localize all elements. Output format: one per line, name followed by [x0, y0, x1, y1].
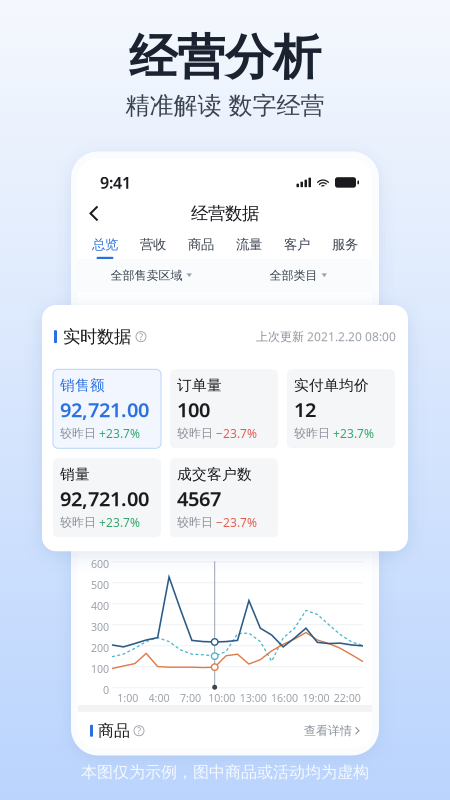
staticText: 2021.2.20 08:00	[304, 329, 396, 345]
staticText: 9:41	[100, 172, 131, 193]
staticText: 较昨日	[294, 426, 330, 441]
staticText: 16:00	[271, 691, 298, 705]
staticText: −23.7%	[216, 514, 257, 530]
button[interactable]: 全部售卖区域	[78, 259, 225, 292]
button[interactable]: 全部类目	[225, 259, 372, 292]
staticText: 流量	[236, 236, 262, 253]
button[interactable]: 返回	[84, 200, 104, 227]
button[interactable]: 销售额	[53, 369, 161, 448]
staticText: 较昨日	[60, 426, 96, 441]
staticText: 上次更新	[256, 329, 304, 344]
staticText: 7:00	[180, 691, 201, 705]
staticText: 0	[103, 683, 109, 697]
staticText: 92,721.00	[60, 485, 149, 512]
button[interactable]: 总览	[81, 233, 129, 259]
button[interactable]: 商品	[177, 233, 225, 259]
staticText: 销量	[60, 465, 90, 483]
staticText: 全部类目	[269, 268, 317, 283]
button[interactable]: 实付单均价	[287, 369, 395, 448]
staticText: 商品	[98, 721, 130, 741]
staticText: 400	[91, 599, 109, 613]
button[interactable]: 成交客户数	[170, 458, 278, 537]
staticText: 服务	[332, 236, 358, 253]
staticText: 600	[91, 557, 109, 571]
button[interactable]: 营收	[129, 233, 177, 259]
staticText: 客户	[284, 236, 310, 253]
staticText: 成交客户数	[177, 465, 252, 483]
staticText: 查看详情	[304, 723, 352, 738]
staticText: 订单量	[177, 376, 222, 394]
button[interactable]: 销量	[53, 458, 161, 537]
staticText: 100	[177, 396, 210, 423]
staticText: 12	[294, 396, 316, 423]
staticText: 92,721.00	[60, 396, 149, 423]
staticText: ?	[137, 724, 141, 737]
button[interactable]: 流量	[225, 233, 273, 259]
staticText: 经营数据	[191, 203, 259, 224]
staticText: 200	[91, 641, 109, 655]
staticText: ?	[139, 330, 143, 343]
staticText: 较昨日	[177, 426, 213, 441]
staticText: 22:00	[334, 691, 361, 705]
staticText: 全部售卖区域	[110, 268, 182, 283]
staticText: 销售额	[60, 376, 105, 394]
button[interactable]: 服务	[321, 233, 369, 259]
staticText: +23.7%	[99, 514, 140, 530]
staticText: 500	[91, 578, 109, 592]
button[interactable]: 订单量	[170, 369, 278, 448]
button[interactable]: 客户	[273, 233, 321, 259]
staticText: 300	[91, 620, 109, 634]
staticText: +23.7%	[99, 425, 140, 441]
staticText: 4:00	[149, 691, 170, 705]
staticText: 总览	[92, 236, 118, 253]
staticText: 精准解读 数字经营	[125, 91, 324, 120]
staticText: 经营分析	[129, 28, 321, 87]
staticText: 4567	[177, 485, 221, 512]
staticText: 1:00	[117, 691, 138, 705]
staticText: 100	[91, 662, 109, 676]
staticText: +23.7%	[333, 425, 374, 441]
staticText: −23.7%	[216, 425, 257, 441]
button[interactable]: 查看详情	[304, 723, 360, 738]
staticText: 19:00	[302, 691, 329, 705]
staticText: 13:00	[240, 691, 267, 705]
staticText: 较昨日	[177, 515, 213, 530]
staticText: 实时数据	[63, 326, 131, 347]
staticText: 营收	[140, 236, 166, 253]
staticText: 10:00	[208, 691, 235, 705]
staticText: 较昨日	[60, 515, 96, 530]
staticText: 实付单均价	[294, 376, 369, 394]
staticText: 本图仅为示例，图中商品或活动均为虚构	[81, 762, 369, 782]
staticText: 商品	[188, 236, 214, 253]
